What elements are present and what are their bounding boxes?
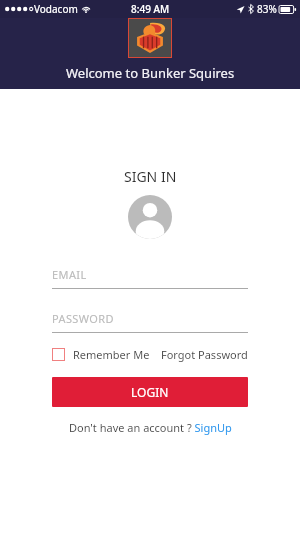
button[interactable]: PASSWORD	[52, 311, 248, 333]
staticText: Welcome to Bunker Squires	[66, 64, 235, 82]
button[interactable]: Profile photo	[128, 195, 172, 239]
button[interactable]: EMAIL	[52, 267, 248, 289]
button[interactable]: Don't have an account ? SignUp	[65, 418, 236, 437]
staticText: SIGN IN	[124, 167, 177, 186]
staticText: Don't have an account ? SignUp	[69, 420, 232, 435]
button[interactable]: LOGIN	[52, 377, 248, 407]
button[interactable]: Forgot Password	[161, 346, 248, 363]
staticText: 8:49 AM	[131, 2, 170, 16]
staticText: PASSWORD	[52, 311, 114, 326]
staticText: EMAIL	[52, 267, 87, 282]
staticText: Vodacom	[34, 2, 78, 16]
staticText: Remember Me	[73, 347, 150, 362]
staticText: Forgot Password	[161, 347, 248, 362]
button[interactable]: Remember Me	[52, 346, 150, 363]
staticText: LOGIN	[131, 384, 169, 400]
staticText: 83%	[257, 2, 277, 16]
